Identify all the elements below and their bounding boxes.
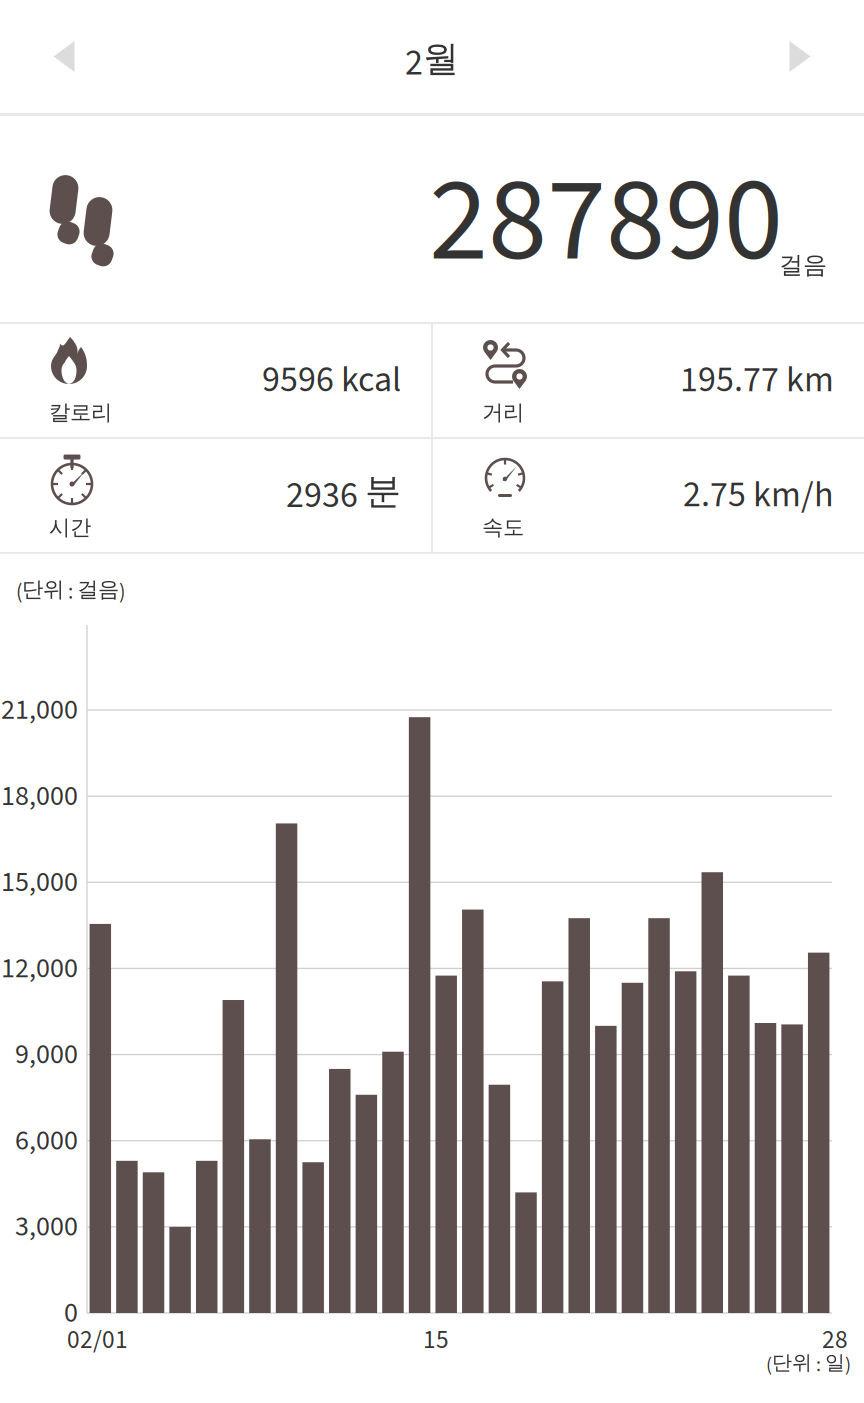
- staticText: 9,000: [15, 1035, 78, 1074]
- button[interactable]: 칼로리: [0, 324, 431, 437]
- staticText: 02/01: [67, 1322, 128, 1358]
- button[interactable]: 속도: [433, 439, 864, 552]
- staticText: 287890: [429, 137, 783, 306]
- staticText: 28: [822, 1322, 848, 1358]
- staticText: 2936 분: [286, 469, 401, 521]
- staticText: 칼로리: [49, 399, 112, 426]
- staticText: 2월: [405, 36, 459, 89]
- staticText: 12,000: [1, 948, 78, 988]
- button[interactable]: Next month: [736, 3, 864, 110]
- staticText: 18,000: [1, 776, 78, 816]
- staticText: (단위 : 걸음): [16, 576, 125, 607]
- staticText: 2.75 km/h: [683, 469, 834, 521]
- staticText: 시간: [49, 514, 91, 541]
- staticText: 21,000: [1, 690, 78, 730]
- staticText: 15: [423, 1322, 449, 1358]
- button[interactable]: 시간: [0, 439, 431, 552]
- staticText: 195.77 km: [680, 354, 834, 406]
- staticText: (단위 : 일): [766, 1350, 851, 1379]
- staticText: 6,000: [15, 1121, 78, 1161]
- button[interactable]: 거리: [433, 324, 864, 437]
- staticText: 9596 kcal: [262, 354, 401, 406]
- staticText: 거리: [482, 399, 524, 426]
- button[interactable]: Previous month: [0, 3, 128, 110]
- staticText: 0: [64, 1293, 78, 1333]
- staticText: 3,000: [15, 1207, 78, 1247]
- staticText: 속도: [482, 514, 524, 541]
- staticText: 걸음: [779, 250, 827, 280]
- staticText: 15,000: [1, 862, 78, 902]
